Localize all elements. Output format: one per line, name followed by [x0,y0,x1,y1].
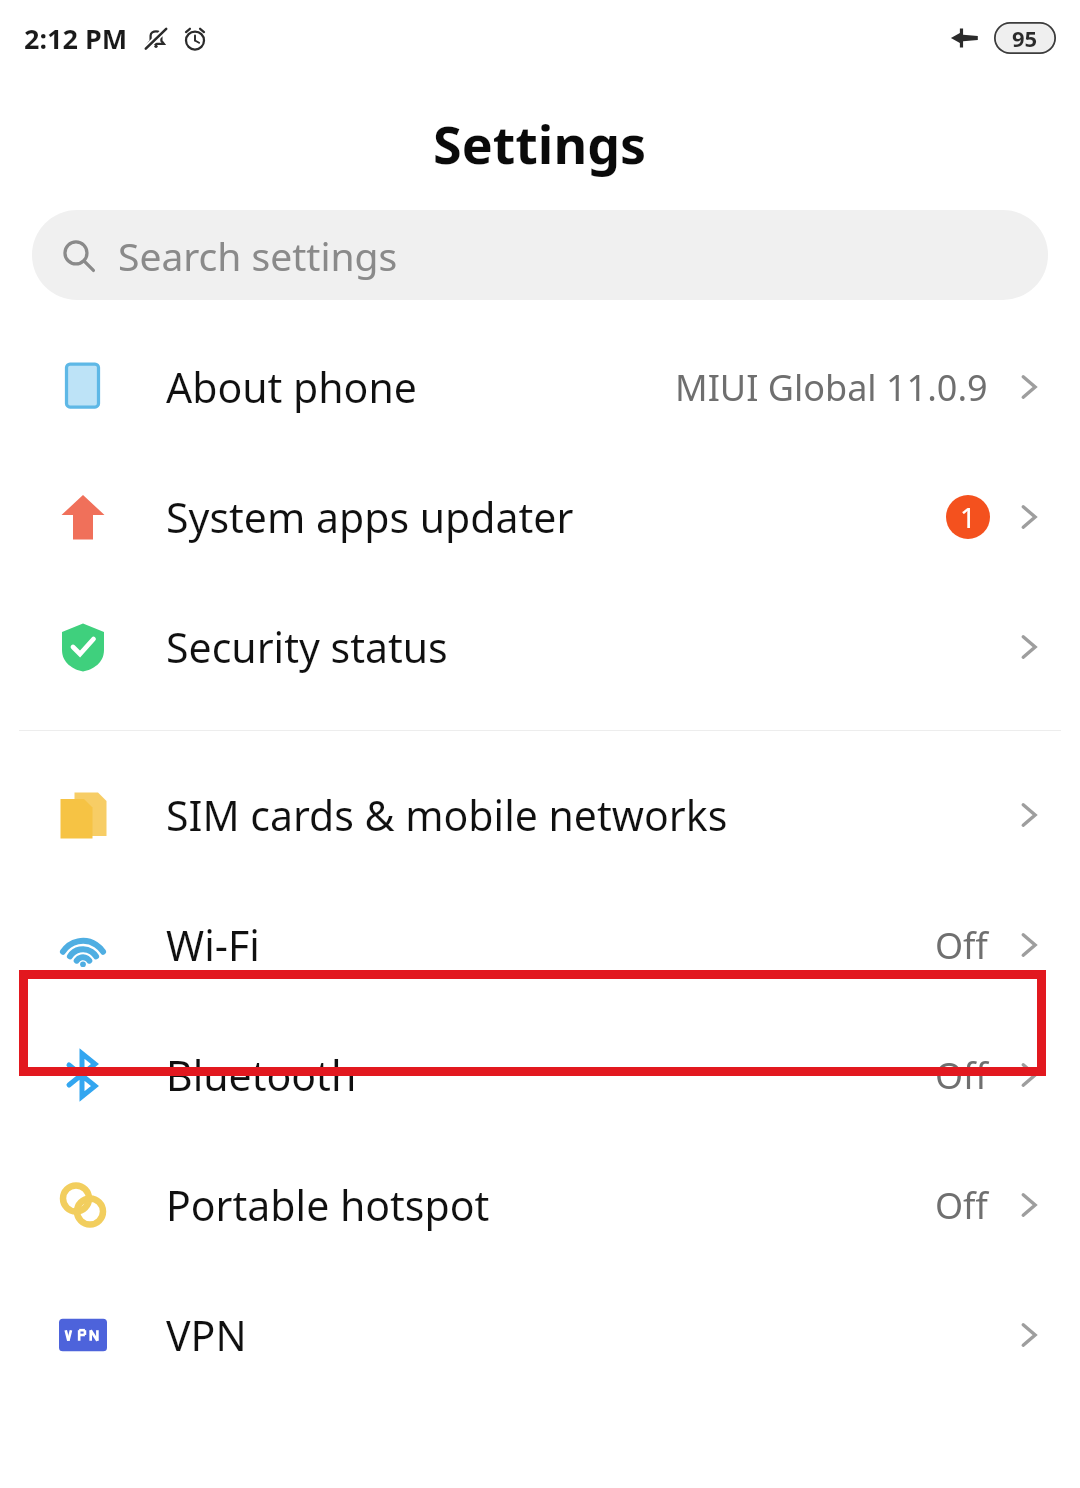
button[interactable]: Wi-Fi [0,880,1080,1010]
staticText: Off [935,1051,988,1100]
button[interactable]: System apps updater [0,452,1080,582]
staticText: Off [935,1181,988,1230]
button[interactable]: Portable hotspot [0,1140,1080,1270]
staticText: Settings [433,108,647,179]
staticText: About phone [166,359,675,415]
button[interactable]: VPN [0,1270,1080,1400]
staticText: Search settings [118,229,398,282]
staticText: Portable hotspot [166,1177,935,1233]
staticText: Security status [166,619,1012,675]
staticText: Off [935,921,988,970]
button[interactable]: About phone [0,322,1080,452]
button[interactable]: SIM cards & mobile networks [0,750,1080,880]
staticText: 1 [960,498,977,536]
staticText: System apps updater [166,489,946,545]
button[interactable]: Bluetooth [0,1010,1080,1140]
staticText: MIUI Global 11.0.9 [675,363,988,412]
button[interactable]: Search settings [32,210,1048,300]
button[interactable]: Security status [0,582,1080,712]
staticText: VPN [166,1307,1012,1363]
staticText: 95 [1012,23,1038,53]
staticText: SIM cards & mobile networks [166,787,1012,843]
staticText: Bluetooth [166,1047,935,1103]
staticText: Wi-Fi [166,917,935,973]
staticText: 2:12 PM [24,20,128,57]
